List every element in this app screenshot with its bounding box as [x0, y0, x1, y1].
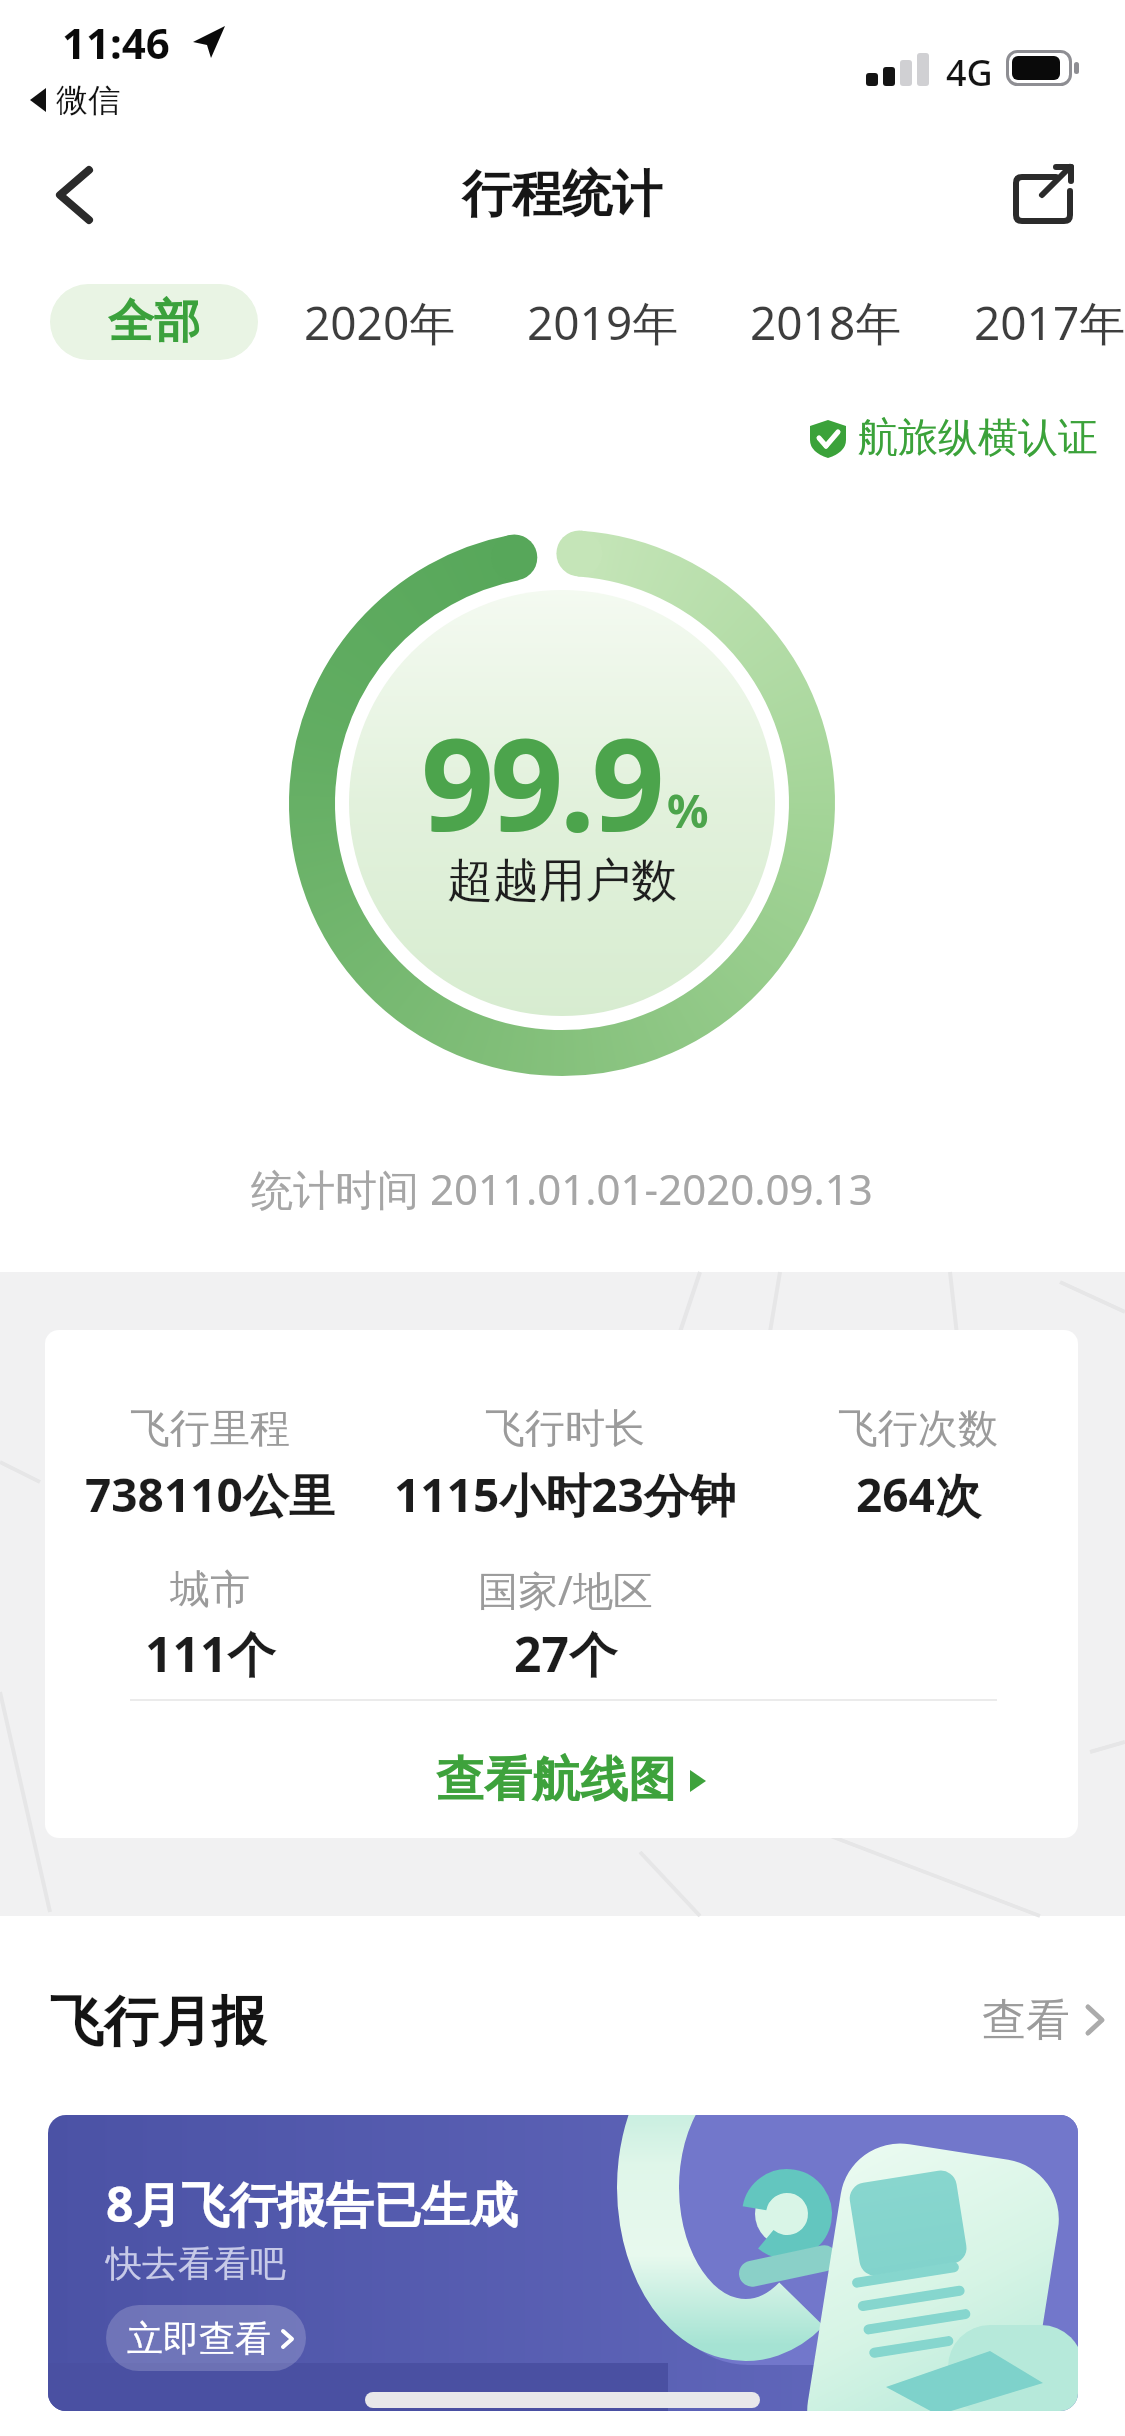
staticText: 4G — [946, 48, 993, 97]
staticText: 8月飞行报告已生成 — [106, 2171, 518, 2237]
button[interactable] — [990, 150, 1100, 240]
staticText: 2019年 — [527, 291, 679, 354]
staticText: 国家/地区 — [478, 1562, 653, 1617]
button[interactable] — [30, 150, 120, 240]
staticText: 行程统计 — [462, 163, 662, 226]
staticText: 27个 — [514, 1621, 617, 1687]
staticText: 飞行时长 — [485, 1403, 645, 1453]
staticText: 全部 — [108, 293, 200, 351]
staticText: 2020年 — [304, 291, 456, 354]
button[interactable]: 2019年 — [513, 284, 693, 360]
staticText: 飞行里程 — [130, 1403, 290, 1453]
staticText: % — [667, 779, 709, 842]
button[interactable]: 2017年 — [960, 284, 1125, 360]
staticText: 飞行月报 — [50, 1988, 266, 2056]
staticText: 城市 — [170, 1564, 250, 1614]
staticText: 111个 — [145, 1621, 276, 1687]
staticText: 264次 — [856, 1463, 981, 1526]
button[interactable]: 2020年 — [290, 284, 470, 360]
staticText: 超越用户数 — [447, 852, 677, 910]
staticText: 2017年 — [974, 291, 1125, 354]
button[interactable]: 查看航线图 — [380, 1735, 750, 1825]
staticText: 11:46 — [62, 14, 170, 71]
staticText: 飞行次数 — [838, 1403, 998, 1453]
staticText: 2018年 — [750, 291, 902, 354]
staticText: 微信 — [56, 80, 120, 120]
staticText: 查看 — [982, 1993, 1070, 2048]
staticText: 快去看看吧 — [106, 2241, 286, 2286]
staticText: 查看航线图 — [436, 1750, 676, 1810]
staticText: 99.9 — [421, 694, 661, 868]
button[interactable]: 查看 — [930, 1985, 1090, 2055]
button[interactable]: 2018年 — [736, 284, 916, 360]
staticText: 航旅纵横认证 — [858, 412, 1098, 462]
button[interactable]: 全部 — [50, 284, 258, 360]
button[interactable]: 立即查看 — [106, 2305, 306, 2371]
staticText: 738110公里 — [85, 1463, 335, 1526]
staticText: 统计时间 2011.01.01-2020.09.13 — [251, 1160, 873, 1217]
button[interactable]: 8月飞行报告已生成 — [48, 2115, 1078, 2411]
staticText: 1115小时23分钟 — [394, 1463, 736, 1526]
staticText: 立即查看 — [127, 2316, 271, 2361]
